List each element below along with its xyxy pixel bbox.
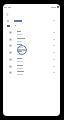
button[interactable] bbox=[3, 36, 60, 43]
button[interactable]: Back bbox=[4, 11, 10, 17]
button[interactable] bbox=[3, 29, 60, 36]
button[interactable] bbox=[3, 18, 60, 23]
button[interactable] bbox=[3, 56, 60, 63]
button[interactable] bbox=[3, 69, 60, 76]
button[interactable] bbox=[3, 42, 60, 49]
button[interactable] bbox=[3, 49, 60, 56]
button[interactable] bbox=[3, 23, 60, 28]
button[interactable] bbox=[3, 63, 60, 70]
